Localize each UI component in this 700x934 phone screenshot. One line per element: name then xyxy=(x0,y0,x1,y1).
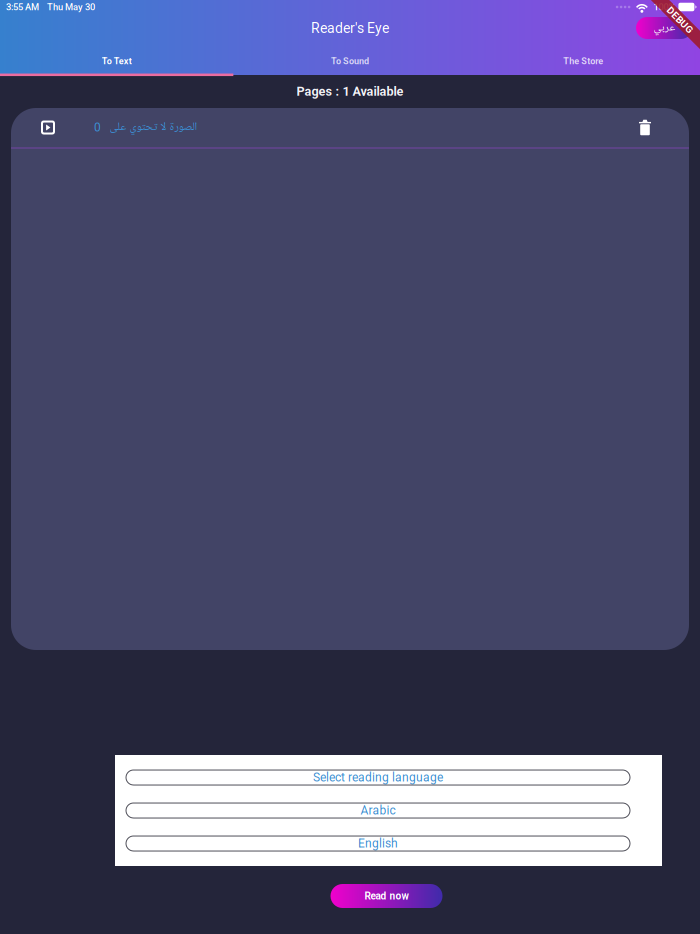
staticText: 3:55 AM xyxy=(6,1,39,12)
button[interactable]: English xyxy=(126,836,630,851)
staticText: Select reading language xyxy=(313,770,443,785)
button[interactable]: Read now xyxy=(330,884,442,908)
button[interactable]: Delete page xyxy=(629,112,661,142)
staticText: DEBUG xyxy=(663,14,696,26)
staticText: 100% xyxy=(653,1,675,12)
staticText: عربي xyxy=(653,18,675,38)
staticText: To Text xyxy=(102,56,132,66)
staticText: 0 xyxy=(94,120,101,135)
staticText: Arabic xyxy=(360,803,395,818)
button[interactable]: To Text xyxy=(0,49,233,75)
staticText: English xyxy=(358,836,398,851)
button[interactable]: Play page xyxy=(35,111,61,143)
staticText: To Sound xyxy=(331,56,369,66)
staticText: Pages : 1 Available xyxy=(296,84,403,99)
button[interactable]: To Sound xyxy=(233,49,467,75)
staticText: Read now xyxy=(364,890,408,902)
button[interactable]: Select reading language xyxy=(126,770,630,785)
button[interactable]: Arabic xyxy=(126,803,630,818)
staticText: الصورة لا تحتوي على xyxy=(109,118,197,137)
staticText: Reader's Eye xyxy=(311,20,389,36)
button[interactable]: عربي xyxy=(636,17,692,39)
staticText: Thu May 30 xyxy=(47,1,95,12)
staticText: The Store xyxy=(563,56,603,66)
button[interactable]: The Store xyxy=(467,49,700,75)
